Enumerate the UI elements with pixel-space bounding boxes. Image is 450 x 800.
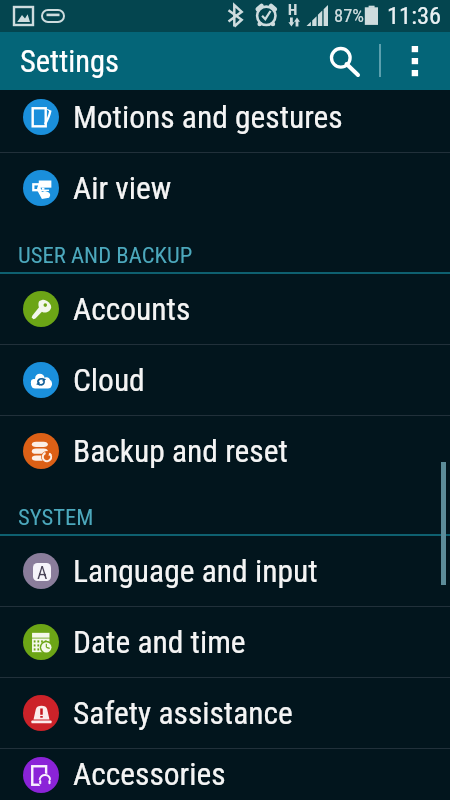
staticText: Accounts <box>73 291 191 328</box>
staticText: Language and input <box>73 553 318 590</box>
staticText: USER AND BACKUP <box>18 242 193 269</box>
button[interactable]: Motions and gestures <box>0 90 450 152</box>
button[interactable]: Search <box>317 38 363 84</box>
staticText: H <box>288 1 298 19</box>
staticText: Motions and gestures <box>73 99 343 136</box>
staticText: Date and time <box>73 624 246 661</box>
staticText: Cloud <box>73 362 145 399</box>
button[interactable]: Date and time <box>0 607 450 677</box>
staticText: Accessories <box>73 756 226 793</box>
button[interactable]: Backup and reset <box>0 416 450 486</box>
button[interactable]: Accessories <box>0 749 450 800</box>
button[interactable]: Accounts <box>0 274 450 344</box>
button[interactable]: A <box>0 536 450 606</box>
button[interactable]: Safety assistance <box>0 678 450 748</box>
staticText: Settings <box>20 44 119 80</box>
button[interactable]: Cloud <box>0 345 450 415</box>
button[interactable]: Air view <box>0 153 450 223</box>
staticText: 11:36 <box>387 1 442 30</box>
staticText: SYSTEM <box>18 504 94 531</box>
staticText: 87% <box>334 5 364 27</box>
button[interactable]: More options <box>398 38 444 84</box>
staticText: Backup and reset <box>73 433 288 470</box>
staticText: Air view <box>73 170 172 207</box>
staticText: A <box>37 563 48 580</box>
staticText: Safety assistance <box>73 695 293 732</box>
